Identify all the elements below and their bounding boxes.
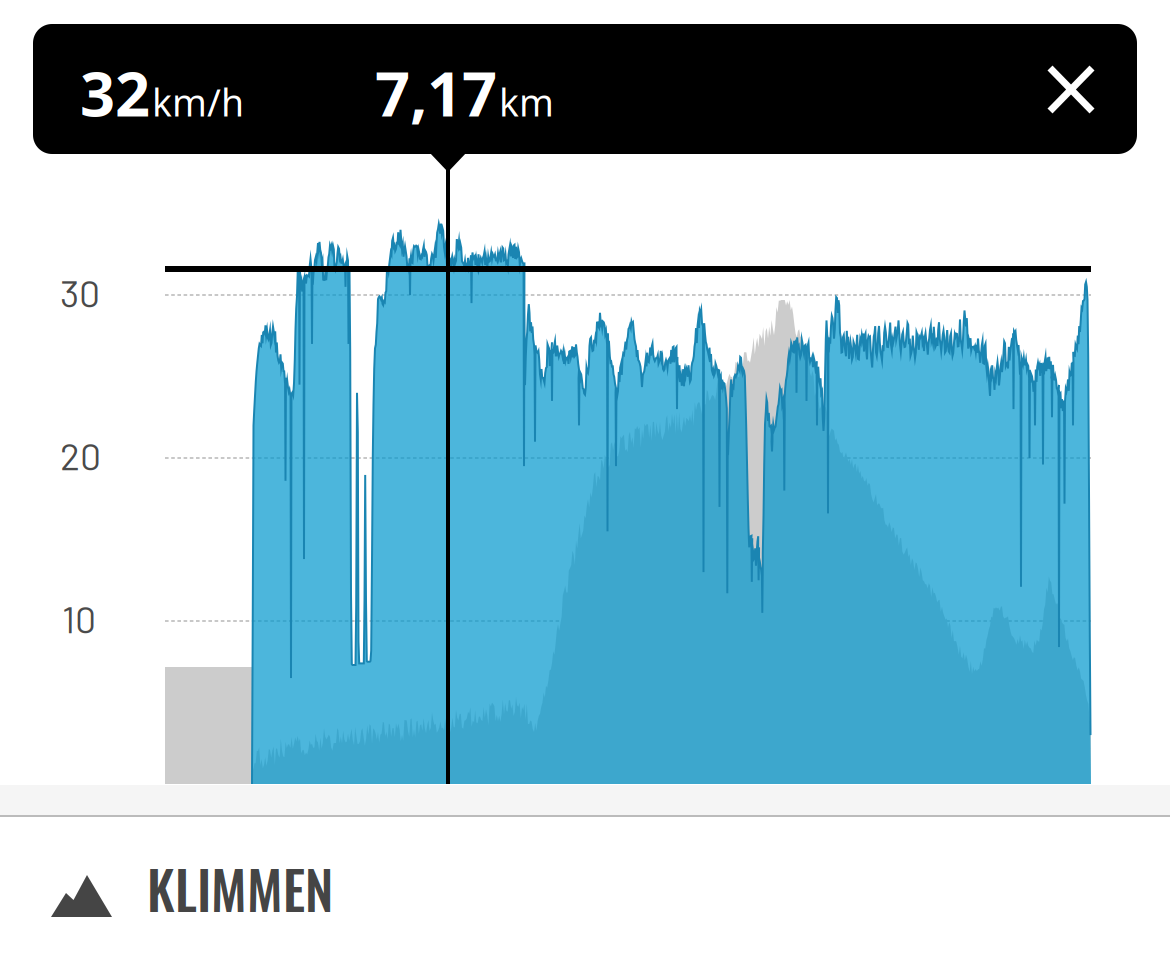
staticText: 20 [60,433,101,478]
staticText: 32 [80,52,150,133]
staticText: 10 [62,596,96,641]
staticText: 7,17 [375,52,497,133]
staticText: km [499,77,554,127]
staticText: KLIMMEN [147,850,333,927]
button[interactable]: Close [0,0,1170,977]
staticText: 30 [60,270,100,315]
staticText: km/h [152,77,244,127]
